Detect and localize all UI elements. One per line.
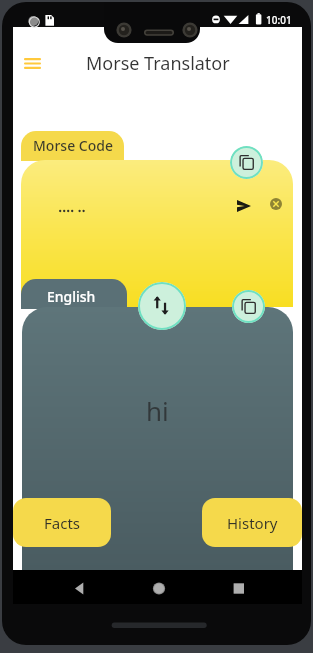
staticText: Morse Code [33, 136, 113, 155]
button[interactable]: Morse Code [21, 131, 124, 161]
staticText: hi [146, 393, 169, 428]
button[interactable]: Copy morse code [230, 146, 263, 179]
button[interactable]: English [21, 279, 127, 309]
button[interactable]: Menu [16, 47, 48, 79]
button[interactable]: Facts [13, 498, 111, 547]
staticText: English [47, 287, 96, 306]
button[interactable]: Copy translation [232, 290, 265, 323]
staticText: 10:01 [266, 13, 292, 27]
staticText: History [227, 513, 278, 533]
button[interactable]: History [202, 498, 302, 547]
staticText: Facts [44, 513, 81, 533]
button[interactable]: Translate [231, 193, 257, 219]
button[interactable]: Clear [265, 193, 287, 215]
button[interactable]: Swap languages [138, 282, 186, 330]
staticText: Morse Translator [86, 51, 230, 76]
